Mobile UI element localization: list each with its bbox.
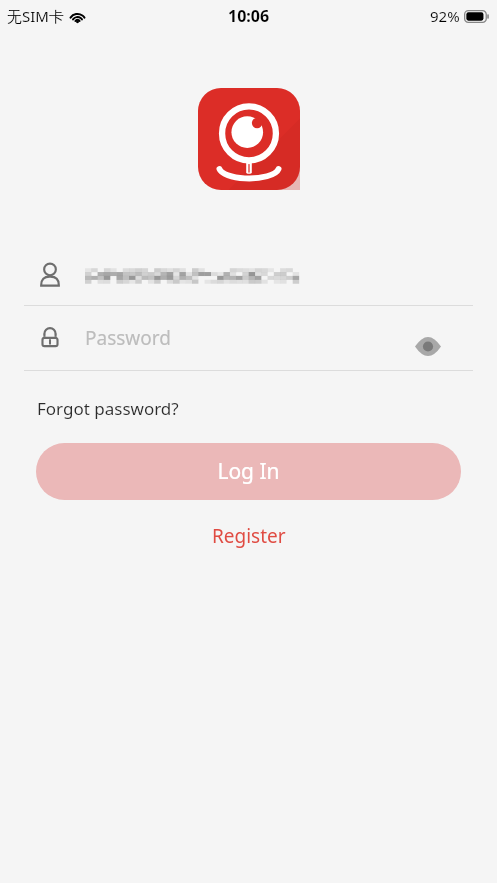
button[interactable] xyxy=(0,245,497,305)
staticText: Register xyxy=(212,523,286,549)
staticText: Log In xyxy=(217,457,280,486)
staticText: 无SIM卡 xyxy=(7,6,64,26)
button[interactable]: Register xyxy=(202,519,296,553)
staticText: 92% xyxy=(430,6,460,26)
button[interactable]: Forgot password? xyxy=(31,394,185,423)
staticText: Forgot password? xyxy=(37,397,179,420)
staticText: Password xyxy=(85,325,171,351)
button[interactable]: Log In xyxy=(36,443,461,500)
button[interactable]: Show password xyxy=(405,326,451,366)
staticText: 10:06 xyxy=(228,5,270,27)
button[interactable]: Password xyxy=(0,306,497,370)
